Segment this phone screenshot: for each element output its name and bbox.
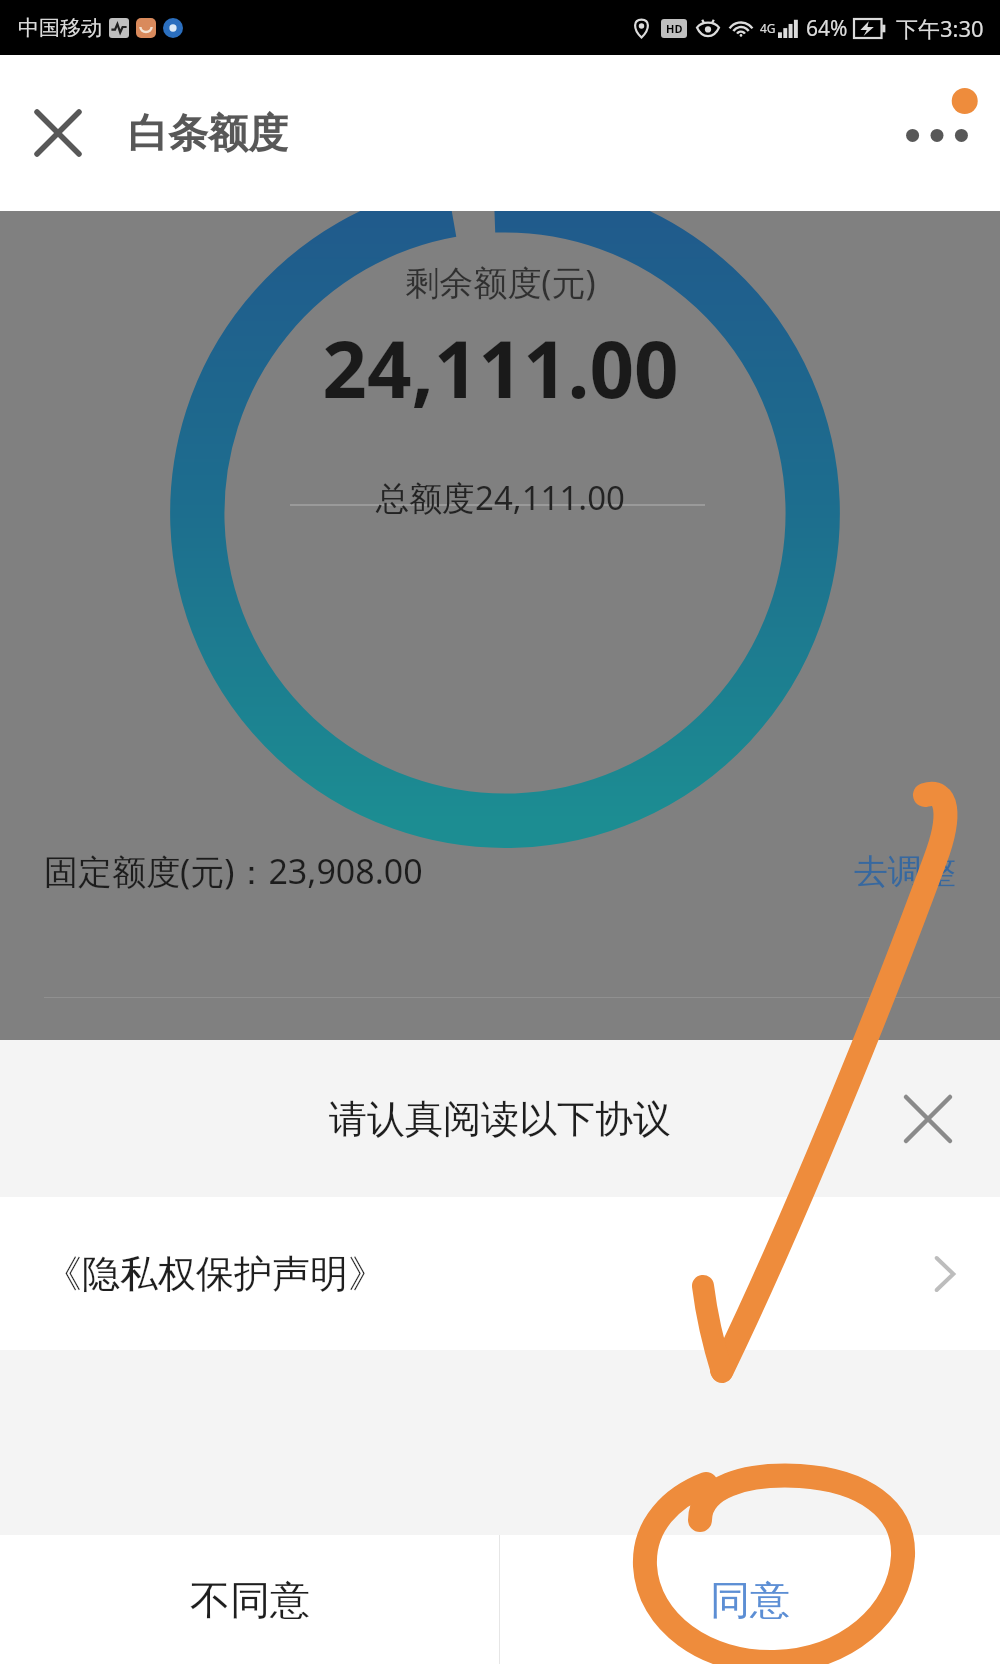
staticText: 下午3:30 [896,13,984,43]
staticText: 不同意 [190,1575,310,1625]
staticText: 同意 [710,1575,790,1625]
button[interactable]: 固定额度(元)：23,908.00 [0,811,1000,931]
staticText: 固定额度(元)：23,908.00 [44,848,423,894]
button[interactable]: 《隐私权保护声明》 [0,1197,1000,1350]
staticText: 24,111.00 [322,315,679,421]
staticText: 《隐私权保护声明》 [44,1250,386,1298]
staticText: 去调整 [854,850,956,893]
staticText: 64% [806,14,848,43]
button[interactable]: 不同意 [0,1535,499,1664]
staticText: 白条额度 [128,108,288,158]
staticText: 剩余额度(元) [405,259,596,305]
staticText: 中国移动 [18,15,102,41]
button[interactable]: Close dialog [886,1077,970,1161]
button[interactable]: 同意 [500,1535,1000,1664]
button[interactable]: More options [894,90,980,176]
staticText: 总额度24,111.00 [376,475,625,520]
staticText: 请认真阅读以下协议 [329,1095,671,1143]
staticText: 4G [760,20,776,36]
button[interactable]: Close [22,97,94,169]
staticText: HD [666,21,683,36]
